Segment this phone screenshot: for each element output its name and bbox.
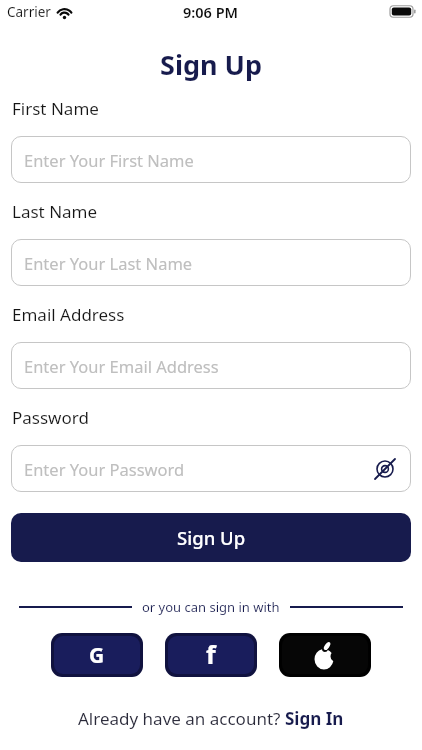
staticText: Sign In — [285, 707, 344, 730]
staticText: Password — [12, 406, 89, 429]
staticText: Last Name — [12, 200, 98, 223]
staticText: 9:06 PM — [183, 2, 239, 22]
staticText: f — [206, 637, 216, 671]
staticText: Enter Your First Name — [24, 149, 194, 171]
button[interactable] — [374, 458, 396, 480]
staticText: Already have an account? — [78, 707, 285, 730]
staticText: Sign Up — [160, 46, 263, 83]
button[interactable]: Enter Your Password — [11, 445, 411, 492]
button[interactable]: f — [168, 636, 254, 674]
staticText: Enter Your Email Address — [24, 355, 219, 377]
staticText: or you can sign in with — [142, 598, 280, 616]
staticText: Sign Up — [177, 525, 246, 550]
staticText: Carrier — [7, 3, 51, 21]
button[interactable]: Enter Your Last Name — [11, 239, 411, 286]
staticText: Enter Your Password — [24, 458, 185, 480]
staticText: Email Address — [12, 303, 125, 326]
button[interactable]: G — [54, 636, 140, 674]
button[interactable]: Sign Up — [11, 513, 411, 562]
button[interactable]: Enter Your Email Address — [11, 342, 411, 389]
staticText: First Name — [12, 97, 99, 120]
button[interactable]: Already have an account? — [11, 707, 411, 730]
staticText: G — [89, 641, 105, 670]
staticText: Enter Your Last Name — [24, 252, 193, 274]
button[interactable] — [282, 636, 368, 674]
button[interactable]: Enter Your First Name — [11, 136, 411, 183]
